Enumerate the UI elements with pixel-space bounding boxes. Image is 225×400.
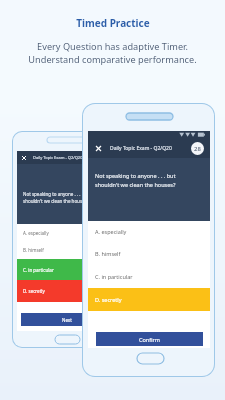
- button[interactable]: Confirm: [96, 332, 203, 346]
- staticText: C. in particular: [23, 267, 54, 273]
- button[interactable]: A. especially: [88, 221, 210, 241]
- button[interactable]: B. himself: [88, 241, 210, 265]
- staticText: Timed Practice: [76, 16, 150, 30]
- staticText: A. especially: [23, 230, 49, 236]
- staticText: Not speaking to anyone . . . but shouldn…: [23, 191, 89, 204]
- staticText: B. himself: [23, 247, 44, 253]
- button[interactable]: A. especially: [17, 224, 116, 241]
- staticText: D. secretly: [23, 288, 45, 294]
- staticText: Not speaking to anyone . . . but shouldn…: [95, 172, 176, 189]
- staticText: Confirm: [139, 336, 160, 343]
- staticText: Daily Topic Exam - Q2/Q20: [110, 145, 172, 152]
- staticText: D. secretly: [95, 296, 122, 303]
- button[interactable]: Next: [21, 313, 112, 326]
- staticText: Every Question has adaptive Timer. Under…: [28, 40, 197, 66]
- staticText: C. in particular: [95, 273, 133, 280]
- button[interactable]: C. in particular: [88, 265, 210, 288]
- button[interactable]: D. secretly: [88, 288, 210, 311]
- staticText: Daily Topic Exam - Q2/Q20: [33, 155, 83, 160]
- button[interactable]: D. secretly: [17, 280, 116, 302]
- button[interactable]: B. himself: [17, 241, 116, 259]
- staticText: B. himself: [95, 250, 121, 257]
- staticText: A. especially: [95, 228, 127, 235]
- staticText: 28: [194, 145, 201, 153]
- button[interactable]: Daily Topic Exam - Q2/Q20: [22, 151, 116, 164]
- button[interactable]: Close exam: [94, 144, 103, 153]
- button[interactable]: C. in particular: [17, 259, 116, 280]
- staticText: Next: [62, 317, 72, 323]
- button[interactable]: Timer: [191, 142, 204, 155]
